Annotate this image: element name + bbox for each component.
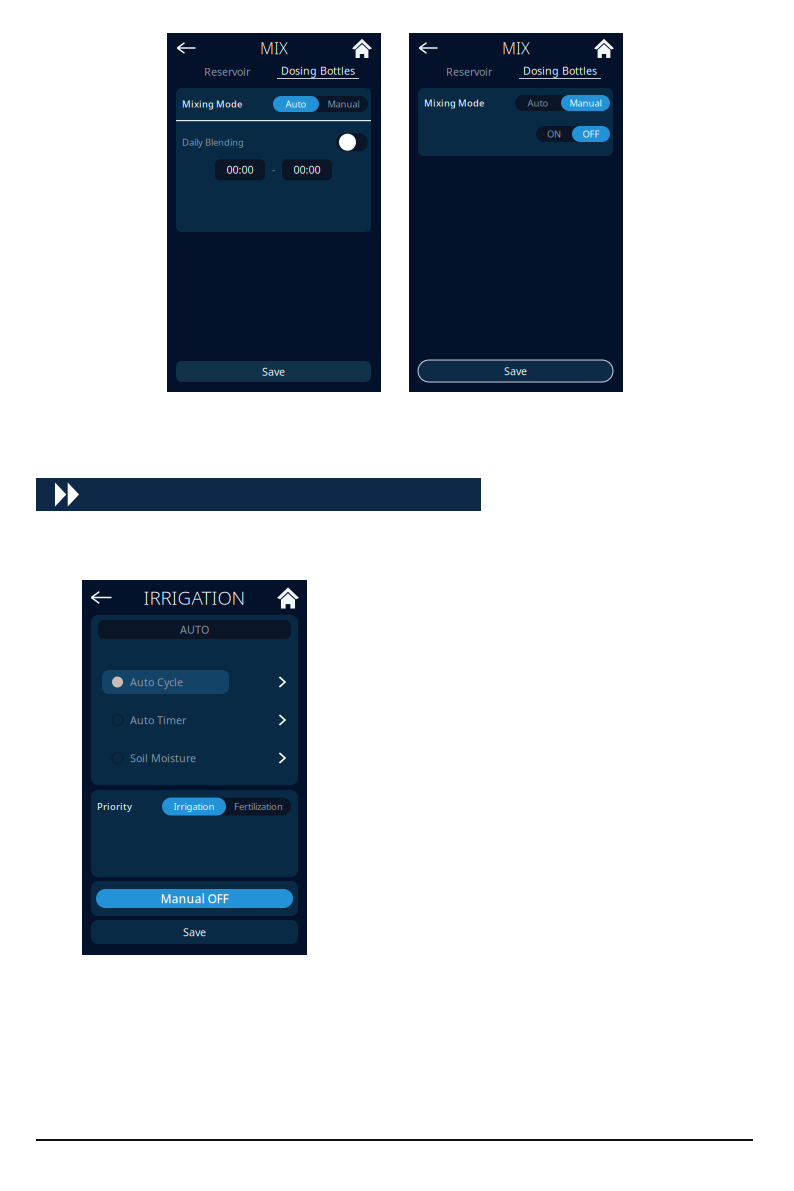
- button[interactable]: Home: [590, 33, 618, 63]
- button[interactable]: Dosing Bottles: [519, 64, 601, 79]
- button[interactable]: Auto Cycle: [91, 670, 298, 694]
- staticText: Reservoir: [204, 64, 250, 79]
- staticText: Auto: [285, 98, 306, 110]
- button[interactable]: Soil Moisture: [91, 746, 298, 770]
- button[interactable]: Fertilization: [226, 797, 291, 815]
- button[interactable]: Save: [418, 360, 613, 382]
- button[interactable]: Manual OFF: [91, 881, 298, 916]
- button[interactable]: Home: [274, 580, 302, 615]
- staticText: Priority: [97, 800, 132, 813]
- staticText: 00:00: [293, 163, 320, 177]
- button[interactable]: Reservoir: [203, 64, 251, 78]
- staticText: Save: [504, 364, 527, 378]
- staticText: Auto Cycle: [130, 675, 183, 689]
- button[interactable]: Home: [348, 33, 376, 63]
- staticText: Manual: [569, 97, 601, 109]
- button[interactable]: Irrigation: [162, 797, 226, 815]
- button[interactable]: OFF: [572, 126, 610, 142]
- button[interactable]: AUTO: [98, 620, 291, 639]
- button[interactable]: Auto: [273, 96, 319, 112]
- staticText: Reservoir: [446, 64, 492, 79]
- staticText: AUTO: [180, 622, 209, 637]
- staticText: Soil Moisture: [130, 751, 196, 765]
- button[interactable]: Back: [87, 580, 115, 615]
- staticText: Save: [183, 925, 206, 939]
- staticText: Fertilization: [234, 800, 283, 813]
- staticText: Irrigation: [173, 800, 214, 813]
- staticText: Manual OFF: [160, 890, 228, 906]
- staticText: -: [272, 163, 275, 176]
- button[interactable]: Manual: [319, 96, 368, 112]
- staticText: Dosing Bottles: [281, 63, 355, 78]
- button[interactable]: Dosing Bottles: [277, 64, 359, 79]
- staticText: Save: [262, 364, 285, 379]
- staticText: Auto: [527, 97, 548, 109]
- staticText: Dosing Bottles: [523, 63, 597, 78]
- staticText: MIX: [502, 37, 530, 59]
- staticText: MIX: [260, 37, 288, 59]
- button[interactable]: Reservoir: [445, 64, 493, 78]
- button[interactable]: Manual: [561, 95, 610, 111]
- button[interactable]: Save: [91, 920, 298, 944]
- staticText: IRRIGATION: [143, 585, 245, 610]
- staticText: Daily Blending: [182, 136, 244, 148]
- button[interactable]: Save: [176, 361, 371, 382]
- button[interactable]: Auto: [515, 95, 561, 111]
- staticText: 00:00: [226, 163, 253, 177]
- staticText: ON: [547, 128, 561, 140]
- button[interactable]: ON: [536, 126, 572, 142]
- staticText: Mixing Mode: [424, 97, 484, 109]
- button[interactable]: Back: [172, 33, 200, 63]
- staticText: Mixing Mode: [182, 98, 242, 110]
- button[interactable]: Auto Timer: [91, 708, 298, 732]
- staticText: OFF: [582, 128, 599, 140]
- button[interactable]: Back: [414, 33, 442, 63]
- staticText: Manual: [327, 98, 359, 110]
- staticText: Auto Timer: [130, 713, 186, 727]
